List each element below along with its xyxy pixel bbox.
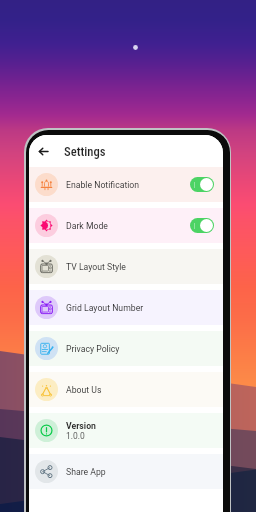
staticText: Enable Notification <box>66 180 140 190</box>
staticText: Dark Mode <box>66 221 108 231</box>
button[interactable]: Dark Mode <box>29 208 223 243</box>
button[interactable]: Dark Mode toggle <box>190 218 214 233</box>
staticText: TV Layout Style <box>66 262 126 272</box>
staticText: Grid Layout Number <box>66 303 144 313</box>
button[interactable]: Version <box>29 413 223 448</box>
button[interactable]: Back <box>32 140 54 162</box>
button[interactable]: TV Layout Style <box>29 249 223 284</box>
staticText: Share App <box>66 467 106 477</box>
button[interactable]: Privacy Policy <box>29 331 223 366</box>
staticText: About Us <box>66 385 102 395</box>
button[interactable]: Share App <box>29 454 223 489</box>
button[interactable]: Enable Notification <box>29 167 223 202</box>
button[interactable]: Enable Notification toggle <box>190 177 214 192</box>
staticText: Privacy Policy <box>66 344 120 354</box>
staticText: Settings <box>64 144 106 159</box>
staticText: Version <box>66 421 96 431</box>
button[interactable]: About Us <box>29 372 223 407</box>
button[interactable]: Grid Layout Number <box>29 290 223 325</box>
staticText: 1.0.0 <box>66 431 85 441</box>
